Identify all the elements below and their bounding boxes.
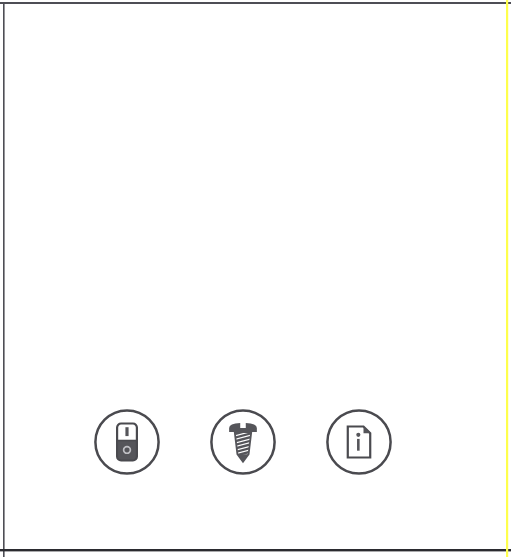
button[interactable]: Information xyxy=(326,409,392,475)
button[interactable]: Hardware xyxy=(210,409,276,475)
button[interactable]: Remote control xyxy=(94,409,160,475)
